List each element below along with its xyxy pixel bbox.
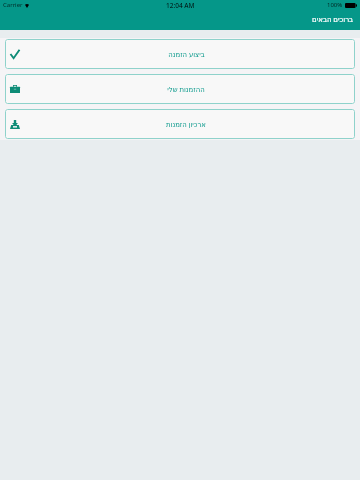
staticText: ההזמנות שלי xyxy=(167,85,205,94)
staticText: ברוכים הבאים xyxy=(312,15,354,25)
staticText: 100% xyxy=(327,1,343,9)
button[interactable]: ההזמנות שלי xyxy=(5,74,355,104)
staticText: ארכיון הזמנות xyxy=(166,120,206,129)
button[interactable]: ארכיון הזמנות xyxy=(5,109,355,139)
button[interactable]: ביצוע הזמנה xyxy=(5,39,355,69)
staticText: Carrier xyxy=(3,1,23,9)
staticText: ביצוע הזמנה xyxy=(168,50,205,59)
staticText: 12:04 AM xyxy=(166,1,195,10)
